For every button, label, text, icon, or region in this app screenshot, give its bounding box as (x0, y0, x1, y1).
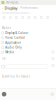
button[interactable]: Tool 4 (20, 15, 26, 20)
button[interactable]: Tool 2 (7, 15, 13, 20)
staticText: Display (4, 5, 17, 11)
staticText: Tip (2, 57, 6, 60)
button[interactable]: Tool 8 (44, 15, 51, 20)
button[interactable]: Tool 1 (1, 15, 7, 20)
button[interactable]: Tool 7 (38, 15, 44, 20)
staticText: Media (5, 50, 13, 54)
staticText: ‹ (2, 5, 3, 11)
button[interactable]: Audio Only (0, 45, 56, 50)
staticText: Modes (2, 26, 11, 30)
staticText: Searching for devices (2, 75, 30, 78)
button[interactable]: Account (2, 92, 6, 96)
staticText: Select a mode to adjust how content appe… (2, 12, 31, 14)
button[interactable]: Media (0, 50, 56, 55)
button[interactable]: Tool 6 (32, 15, 38, 20)
button[interactable]: Back (1, 5, 3, 11)
staticText: Workspace (6, 1, 19, 4)
button[interactable]: More (50, 92, 54, 96)
button[interactable]: Application (0, 40, 56, 45)
staticText: Audio Only (5, 46, 21, 49)
button[interactable]: Tool 3 (13, 15, 20, 20)
staticText: Display & Colour (5, 31, 28, 35)
button[interactable]: Tool 5 (26, 15, 32, 20)
button[interactable]: Display & Colour (0, 31, 56, 35)
staticText: Application (5, 41, 21, 44)
staticText: Voice Control (5, 36, 25, 39)
staticText: Preferences (20, 6, 37, 10)
button[interactable]: Voice Control (0, 35, 56, 40)
